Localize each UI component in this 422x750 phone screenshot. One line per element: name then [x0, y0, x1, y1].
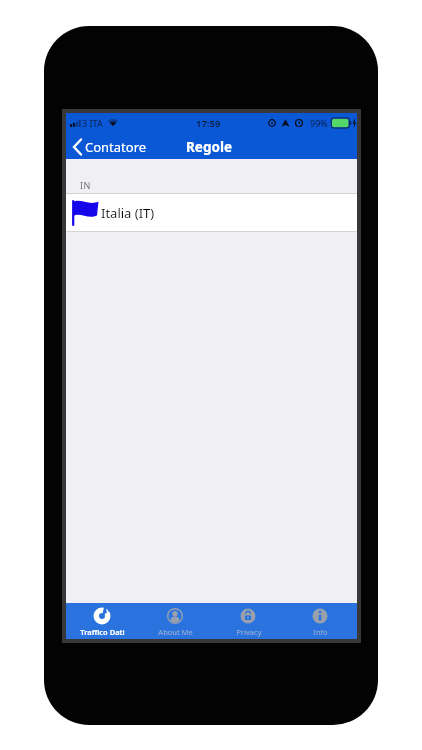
staticText: About Me — [158, 627, 193, 637]
staticText: Italia (IT) — [101, 204, 155, 222]
staticText: Contatore — [85, 138, 147, 156]
staticText: Regole — [186, 138, 232, 156]
staticText: Privacy — [236, 627, 262, 637]
button[interactable]: About Me — [139, 603, 212, 639]
staticText: Info — [313, 627, 328, 637]
staticText: 3 ITA — [82, 117, 103, 129]
button[interactable]: Privacy — [212, 603, 285, 639]
button[interactable]: Contatore — [68, 135, 158, 159]
button[interactable]: Italia (IT) — [66, 193, 357, 232]
staticText: 99% — [310, 117, 328, 129]
staticText: IN — [80, 179, 91, 191]
button[interactable]: Traffico Dati — [66, 603, 139, 639]
button[interactable]: Info — [284, 603, 357, 639]
staticText: Traffico Dati — [80, 627, 125, 637]
staticText: 17:59 — [196, 117, 221, 130]
